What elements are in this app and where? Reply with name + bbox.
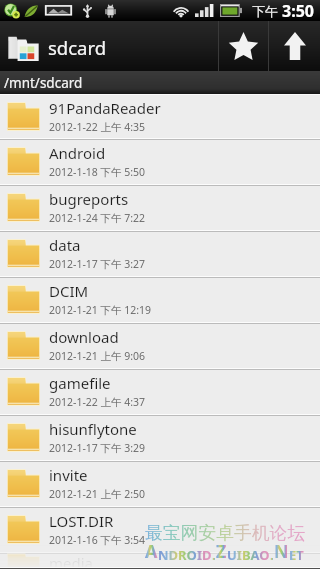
button[interactable]: gamefile — [0, 370, 320, 414]
button[interactable]: Android — [0, 140, 320, 184]
staticText: NDROID — [158, 546, 212, 564]
staticText: N — [274, 539, 289, 564]
staticText: /mnt/sdcard — [4, 74, 83, 92]
staticText: download — [49, 327, 119, 347]
button[interactable]: LOST.DIR — [0, 508, 320, 552]
staticText: 2012-1-21 上午 2:50 — [49, 487, 146, 501]
staticText: 91PandaReader — [49, 98, 161, 118]
staticText: 2012-1-22 上午 4:37 — [49, 395, 146, 409]
button[interactable]: 91PandaReader — [0, 95, 320, 138]
staticText: 下午 — [252, 3, 278, 19]
button[interactable]: Up one level — [269, 21, 320, 71]
button[interactable]: invite — [0, 462, 320, 506]
staticText: 2012-1-16 下午 3:54 — [49, 533, 146, 547]
staticText: 2012-1-22 上午 4:35 — [49, 120, 146, 134]
staticText: gamefile — [49, 373, 111, 393]
staticText: 2012-1-21 上午 9:06 — [49, 349, 146, 363]
staticText: A — [145, 539, 158, 564]
staticText: sdcard — [48, 35, 107, 60]
staticText: UIBAO — [227, 546, 270, 564]
staticText: 2012-1-17 下午 3:29 — [49, 441, 146, 455]
staticText: media — [49, 553, 93, 568]
staticText: . — [270, 546, 274, 564]
staticText: ET — [289, 546, 304, 564]
button[interactable]: Favorites — [219, 21, 268, 71]
button[interactable]: download — [0, 324, 320, 368]
staticText: invite — [49, 465, 88, 485]
staticText: Android — [49, 143, 106, 163]
button[interactable]: DCIM — [0, 278, 320, 322]
staticText: 2012-1-21 下午 12:19 — [49, 303, 152, 317]
button[interactable]: hisunflytone — [0, 416, 320, 460]
staticText: LOST.DIR — [49, 511, 114, 531]
staticText: 2012-1-18 下午 5:50 — [49, 165, 146, 179]
staticText: hisunflytone — [49, 419, 137, 439]
staticText: 3:50 — [282, 0, 314, 21]
staticText: 2012-1-17 下午 3:27 — [49, 257, 146, 271]
button[interactable]: bugreports — [0, 186, 320, 230]
staticText: bugreports — [49, 189, 129, 209]
staticText: Z — [216, 539, 227, 564]
staticText: 最宝网安卓手机论坛 — [145, 522, 306, 544]
button[interactable]: data — [0, 232, 320, 276]
button[interactable]: media — [0, 554, 320, 569]
staticText: data — [49, 235, 81, 255]
staticText: DCIM — [49, 281, 89, 301]
staticText: 2012-1-24 下午 7:22 — [49, 211, 146, 225]
staticText: . — [212, 546, 216, 564]
